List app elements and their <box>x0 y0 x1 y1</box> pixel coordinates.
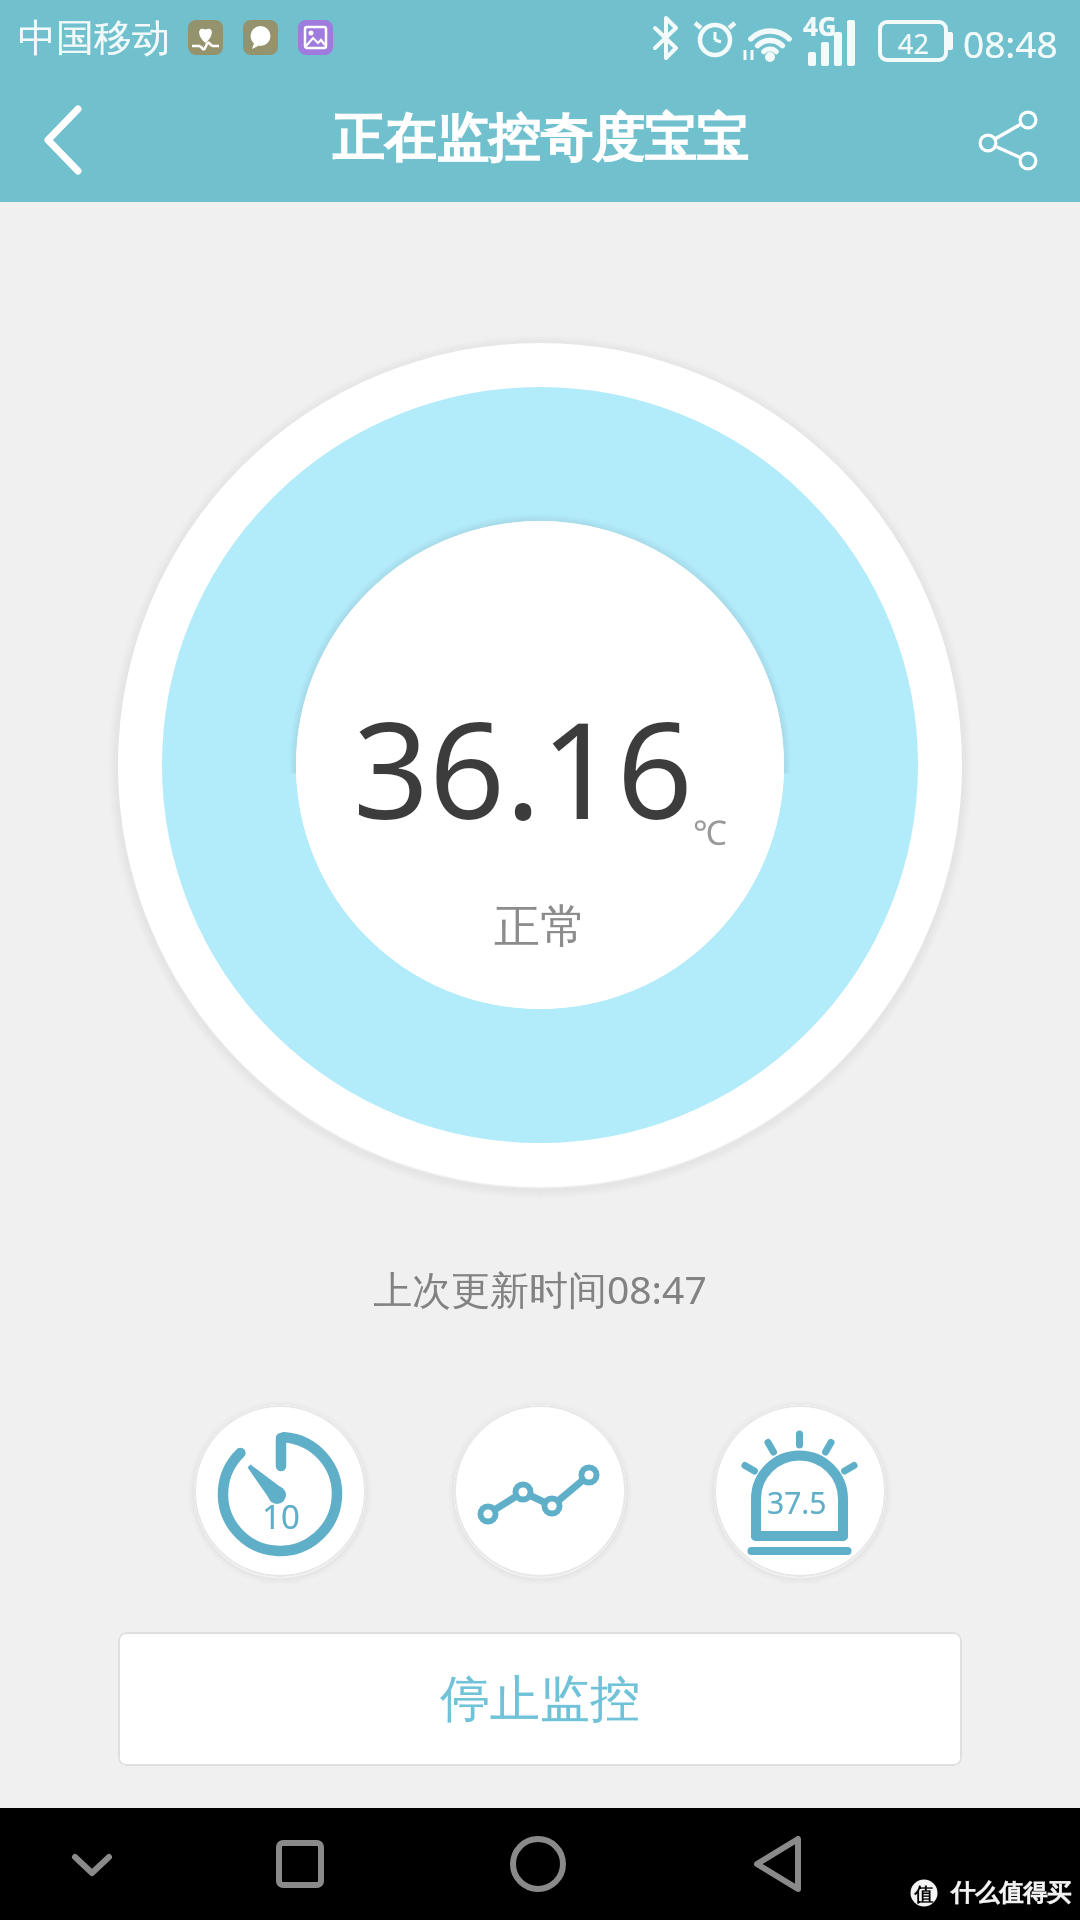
staticText: ℃ <box>693 809 727 855</box>
button[interactable] <box>14 85 114 195</box>
staticText: 中国移动 <box>18 14 170 62</box>
button[interactable]: 37.5 <box>714 1405 886 1577</box>
button[interactable] <box>498 1834 578 1894</box>
button[interactable] <box>738 1834 818 1894</box>
staticText: 36.16 <box>353 677 693 858</box>
button[interactable] <box>454 1405 626 1577</box>
staticText: 4G <box>803 8 837 43</box>
staticText: 正在监控奇度宝宝 <box>332 106 748 172</box>
staticText: 值 <box>914 1883 933 1907</box>
staticText: 10 <box>262 1494 300 1539</box>
button[interactable]: 停止监控 <box>118 1632 962 1766</box>
staticText: 37.5 <box>767 1482 827 1523</box>
staticText: 42 <box>898 25 929 62</box>
button[interactable] <box>260 1834 340 1894</box>
button[interactable]: 10 <box>194 1405 366 1577</box>
staticText: 上次更新时间08:47 <box>373 1262 707 1315</box>
staticText: 08:48 <box>963 18 1058 68</box>
staticText: 停止监控 <box>440 1668 640 1731</box>
button[interactable] <box>950 85 1066 195</box>
button[interactable] <box>52 1836 132 1896</box>
staticText: 正常 <box>494 898 586 956</box>
staticText: 什么值得买 <box>951 1878 1071 1908</box>
